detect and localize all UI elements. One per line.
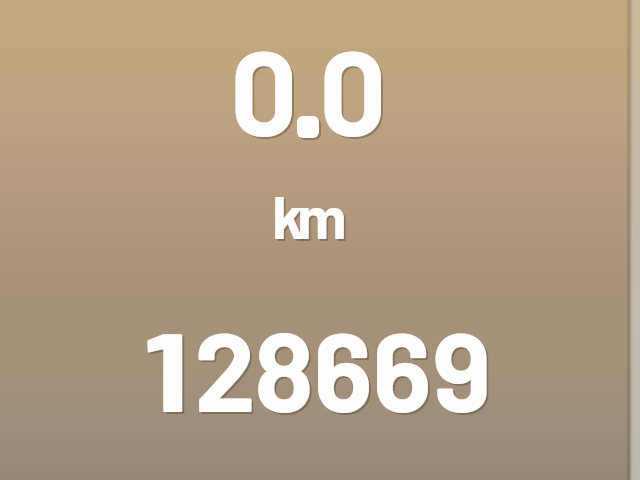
staticText: 0 xyxy=(194,18,334,160)
staticText: m xyxy=(254,182,394,253)
staticText: 6 xyxy=(332,302,472,434)
staticText: 6 xyxy=(275,304,415,436)
staticText: 2 xyxy=(155,302,295,434)
button[interactable]: Odometer 128669 kilometres xyxy=(130,318,505,428)
staticText: 8 xyxy=(214,302,354,434)
staticText: 0 xyxy=(196,20,336,162)
staticText: 6 xyxy=(273,302,413,434)
staticText: 8 xyxy=(216,304,356,436)
staticText: m xyxy=(252,180,392,251)
button[interactable]: Trip distance 0.0 kilometres, tap to res… xyxy=(200,40,440,255)
staticText: 0 xyxy=(285,20,425,162)
staticText: 9 xyxy=(392,302,532,434)
staticText: 0 xyxy=(283,18,423,160)
staticText: 1 xyxy=(84,304,252,436)
staticText: k xyxy=(220,182,360,253)
staticText: k xyxy=(218,180,358,251)
staticText: 1 xyxy=(82,302,250,434)
staticText: 9 xyxy=(394,304,534,436)
staticText: 2 xyxy=(157,304,297,436)
staticText: 6 xyxy=(334,304,474,436)
